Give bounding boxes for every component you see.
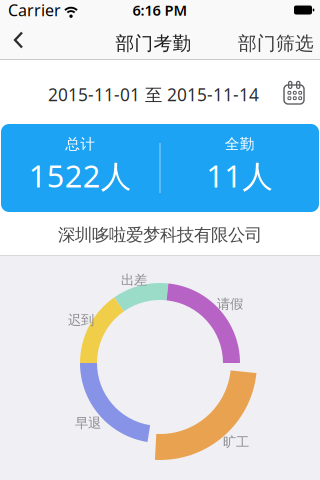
staticText: 深圳哆啦爱梦科技有限公司 <box>58 224 262 246</box>
staticText: 11人 <box>206 155 273 196</box>
staticText: 请假 <box>217 296 243 312</box>
staticText: 部门筛选 <box>238 32 314 55</box>
staticText: 迟到 <box>68 312 94 328</box>
button[interactable]: 部门筛选 <box>238 28 320 51</box>
staticText: 旷工 <box>223 434 249 450</box>
staticText: 早退 <box>75 415 101 431</box>
button[interactable]: 2015-11-01 至 2015-11-14 <box>0 60 320 124</box>
button[interactable] <box>0 20 30 60</box>
staticText: Carrier <box>8 0 61 21</box>
staticText: 出差 <box>121 272 147 288</box>
staticText: 部门考勤 <box>115 32 191 55</box>
staticText: 全勤 <box>225 135 255 153</box>
staticText: 总计 <box>65 135 95 153</box>
staticText: 2015-11-01 至 2015-11-14 <box>48 83 259 106</box>
staticText: 6:16 PM <box>132 0 187 20</box>
staticText: 1522人 <box>29 155 132 196</box>
